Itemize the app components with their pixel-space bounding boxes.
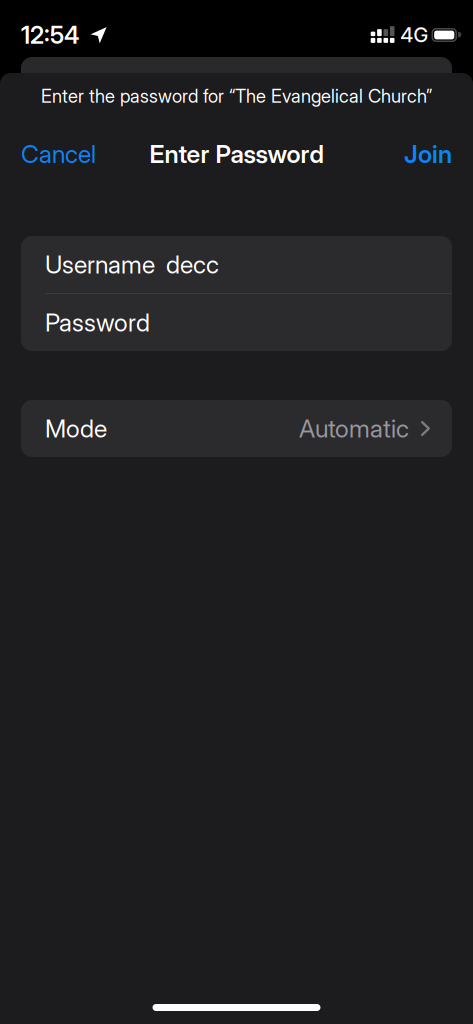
staticText: Username — [45, 250, 155, 279]
staticText: 4G — [400, 23, 428, 47]
staticText: 12:54 — [21, 20, 79, 49]
staticText: Enter the password for “The Evangelical … — [41, 85, 432, 107]
button[interactable]: Username — [21, 236, 452, 293]
staticText: Cancel — [21, 139, 96, 169]
button[interactable]: Password — [21, 294, 452, 351]
button[interactable]: Cancel — [21, 139, 96, 169]
staticText: decc — [166, 250, 219, 279]
staticText: Password — [45, 308, 150, 337]
button[interactable]: Mode — [21, 400, 452, 457]
staticText: Mode — [45, 414, 107, 443]
staticText: Join — [404, 139, 452, 169]
staticText: Enter Password — [149, 139, 323, 169]
staticText: Automatic — [299, 414, 409, 443]
button[interactable]: Join — [404, 139, 452, 169]
